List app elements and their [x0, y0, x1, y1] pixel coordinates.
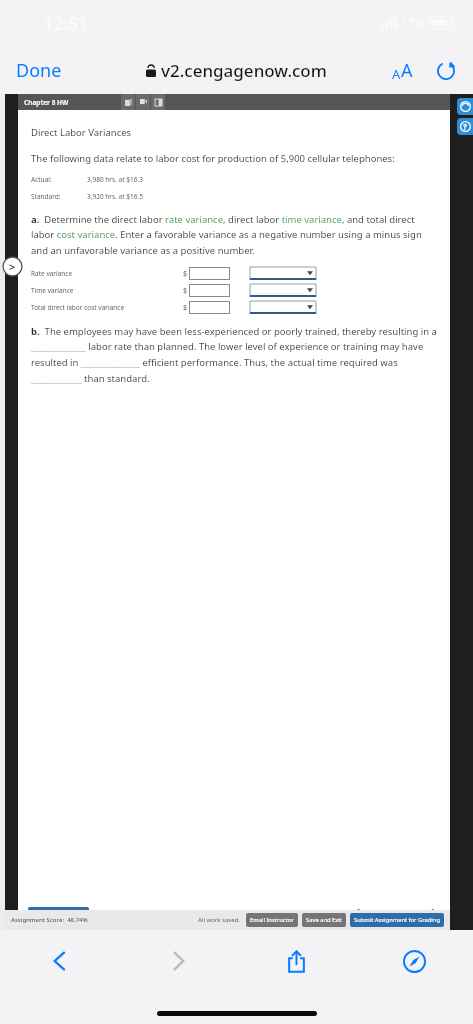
staticText: Assignment Score: 48.74% [11, 916, 88, 924]
staticText: 3,980 hrs. at $16.3 [87, 175, 143, 184]
staticText: a. Determine the direct labor rate varia… [31, 213, 438, 257]
button[interactable]: eBook [121, 94, 135, 110]
staticText: Total direct labor cost variance [31, 303, 125, 312]
staticText: Previous [365, 909, 394, 919]
staticText: Next [411, 909, 427, 919]
staticText: ? [463, 121, 467, 132]
staticText: ❯ [430, 908, 439, 920]
staticText: $ [183, 286, 188, 296]
button[interactable]: Help [457, 118, 473, 135]
staticText: Done [16, 58, 62, 83]
staticText: 3,920 hrs. at $16.5 [87, 192, 143, 201]
button[interactable]: Email Instructor [246, 913, 298, 927]
staticText: Chapter 8 HW [24, 98, 69, 107]
staticText: Check My Work [35, 910, 82, 919]
button[interactable]: Back [0, 930, 119, 992]
button[interactable]: Time variance favorable or unfavorable [250, 284, 316, 297]
button[interactable]: Support [457, 98, 473, 115]
button[interactable]: ❮ [350, 906, 397, 922]
staticText: ❮ [353, 908, 362, 920]
button[interactable]: Next question [2, 256, 23, 277]
button[interactable]: Time variance amount [189, 284, 230, 297]
button[interactable]: Notes [151, 94, 165, 110]
button[interactable]: Total direct labor cost variance amount [189, 301, 230, 314]
button[interactable]: Text size [388, 54, 417, 87]
staticText: Time variance [31, 286, 74, 295]
staticText: Submit Assignment for Grading [354, 916, 440, 924]
button[interactable]: Forward [119, 930, 237, 992]
button[interactable]: Submit Assignment for Grading [350, 913, 444, 927]
staticText: The following data relate to labor cost … [31, 152, 395, 165]
button[interactable]: Next [408, 906, 442, 922]
staticText: Direct Labor Variances [31, 126, 132, 139]
staticText: $ [183, 269, 188, 279]
staticText: A [401, 58, 413, 83]
staticText: A [392, 65, 401, 83]
staticText: $ [183, 303, 188, 313]
staticText: Rate variance [31, 269, 73, 278]
button[interactable]: Save and Exit [302, 913, 346, 927]
staticText: > [9, 259, 16, 274]
button[interactable]: Check My Work [28, 907, 89, 922]
staticText: v2.cengagenow.com [161, 59, 327, 82]
button[interactable]: Share [237, 930, 355, 992]
button[interactable]: Rate variance amount [189, 267, 230, 280]
staticText: Standard: [31, 192, 61, 201]
staticText: b. The employees may have been less-expe… [31, 325, 438, 385]
staticText: All work saved. [198, 916, 241, 924]
button[interactable]: Bookmarks [355, 930, 473, 992]
staticText: Actual: [31, 175, 52, 184]
button[interactable]: Rate variance favorable or unfavorable [250, 267, 316, 280]
staticText: Email Instructor [250, 916, 294, 924]
button[interactable]: Done [8, 54, 70, 87]
staticText: Save and Exit [306, 916, 342, 924]
button[interactable]: Reload [433, 58, 459, 84]
button[interactable]: Video [136, 94, 150, 110]
button[interactable]: Total direct labor cost variance favorab… [250, 301, 316, 314]
